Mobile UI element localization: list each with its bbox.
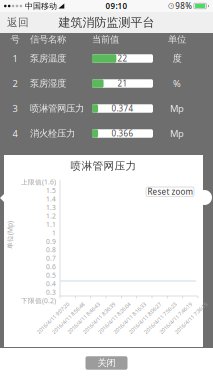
staticText: 单位(Mp): [0, 231, 24, 239]
staticText: 0.374: [111, 103, 133, 114]
staticText: 信号名称: [30, 34, 66, 45]
staticText: 喷淋管网压力: [30, 103, 84, 114]
staticText: 2016/4/11 8:26:04: [93, 314, 136, 322]
staticText: 消火栓压力: [30, 128, 75, 139]
staticText: 喷淋管网压力: [70, 159, 136, 172]
staticText: 度: [172, 53, 181, 64]
staticText: 1.5: [46, 186, 56, 195]
staticText: 0.4: [46, 279, 56, 288]
staticText: 2016/4/11 8:56:48: [47, 314, 90, 322]
staticText: 22: [117, 53, 127, 64]
button[interactable]: 3: [0, 96, 213, 121]
button[interactable]: 返回: [0, 12, 36, 33]
staticText: 0.9: [46, 237, 56, 246]
staticText: 21: [117, 78, 127, 89]
button[interactable]: 4: [0, 121, 213, 146]
staticText: Mp: [170, 102, 184, 115]
staticText: 0.3: [46, 288, 56, 297]
staticText: 中国移动: [25, 1, 57, 11]
staticText: 2016/4/11 8:06:27: [123, 314, 166, 322]
staticText: 2016/4/11 7:46:19: [154, 314, 197, 322]
staticText: 1.2: [46, 211, 56, 220]
staticText: 2016/4/11 8:46:43: [62, 314, 105, 322]
staticText: 1: [52, 228, 56, 237]
staticText: 2016/4/11 8:16:33: [108, 314, 151, 322]
staticText: 0.366: [111, 128, 133, 139]
staticText: 0.8: [46, 245, 56, 254]
staticText: 98%: [175, 1, 192, 11]
staticText: 1.3: [46, 203, 56, 212]
staticText: %: [173, 77, 181, 90]
staticText: 返回: [7, 16, 29, 29]
staticText: 1.4: [46, 194, 56, 203]
staticText: 建筑消防监测平台: [58, 15, 154, 30]
button[interactable]: 关闭: [85, 356, 127, 370]
staticText: 2016/4/11 9:07:20: [31, 314, 74, 322]
button[interactable]: Reset zoom: [146, 187, 194, 196]
button[interactable]: 2: [0, 71, 213, 96]
staticText: 1.1: [46, 220, 56, 229]
staticText: 当前值: [92, 34, 119, 45]
staticText: 3: [12, 102, 17, 115]
staticText: 1: [12, 52, 17, 65]
staticText: 下限值(0.2): [21, 296, 56, 305]
staticText: 0.5: [46, 271, 56, 280]
staticText: 2016/4/11 8:36:39: [77, 314, 120, 322]
staticText: 关闭: [97, 357, 115, 369]
button[interactable]: 1: [0, 46, 213, 71]
staticText: Reset zoom: [147, 186, 192, 197]
staticText: 泵房湿度: [30, 78, 66, 89]
staticText: 09:10: [105, 1, 127, 11]
staticText: 单位: [168, 34, 186, 45]
staticText: 0.7: [46, 254, 56, 263]
staticText: 0.6: [46, 262, 56, 271]
staticText: 4: [12, 127, 17, 140]
staticText: 号: [10, 34, 19, 45]
staticText: 2016/4/11 7:36:15: [169, 314, 212, 322]
staticText: 泵房温度: [30, 53, 66, 64]
staticText: 上限值(1.6): [21, 178, 56, 186]
staticText: 2016/4/11 7:56:23: [139, 314, 182, 322]
staticText: Mp: [170, 127, 184, 140]
staticText: 2: [12, 77, 17, 90]
